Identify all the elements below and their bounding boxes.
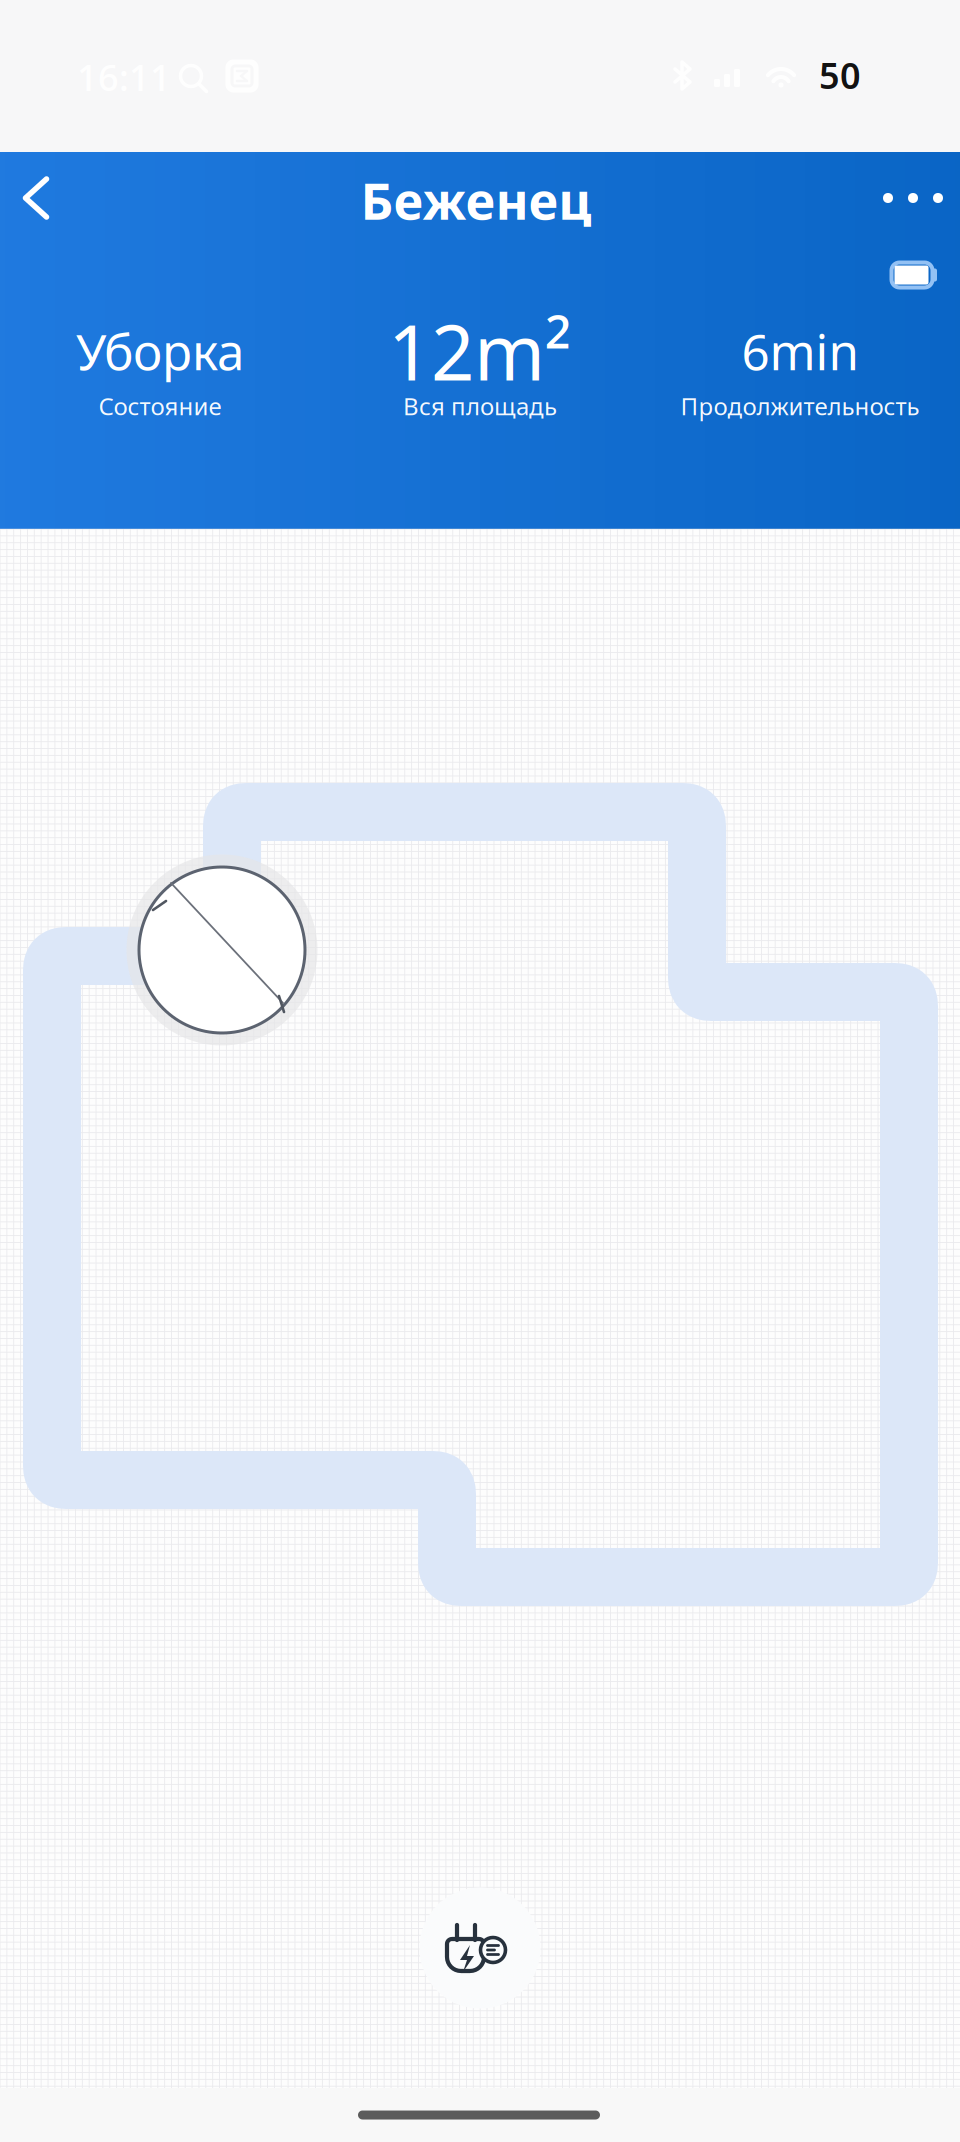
button[interactable]: More options [865, 154, 960, 242]
staticText: 12m² [388, 300, 572, 401]
staticText: Продолжительность [680, 390, 919, 422]
staticText: 6min [741, 318, 858, 384]
button[interactable]: Return to dock [419, 1887, 540, 2008]
staticText: Вся площадь [403, 390, 557, 422]
staticText: Уборка [76, 318, 244, 384]
staticText: Состояние [98, 390, 221, 422]
staticText: Беженец [360, 166, 591, 234]
staticText: 50 [819, 51, 861, 99]
button[interactable]: Back [0, 154, 81, 242]
